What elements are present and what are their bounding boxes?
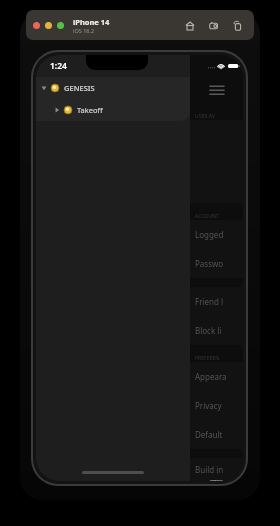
button[interactable]: GENESIS xyxy=(36,77,190,99)
button[interactable]: Passwo xyxy=(190,249,243,278)
staticText: PREFEREN xyxy=(195,355,220,362)
button[interactable]: Privacy xyxy=(190,391,243,420)
button[interactable]: Block li xyxy=(190,316,243,345)
button[interactable]: Close xyxy=(33,22,40,29)
staticText: Takeoff xyxy=(77,105,103,115)
button[interactable]: Menu xyxy=(190,77,243,103)
staticText: Default xyxy=(195,429,223,440)
button[interactable]: Maximize xyxy=(57,22,64,29)
button[interactable]: Minimize xyxy=(45,22,52,29)
staticText: Friend l xyxy=(195,296,224,307)
staticText: Passwo xyxy=(195,258,224,269)
staticText: Appeara xyxy=(195,371,227,382)
staticText: Block li xyxy=(195,325,222,336)
button[interactable]: Screenshot xyxy=(206,18,221,33)
button[interactable]: Build in xyxy=(190,458,243,481)
button[interactable]: Friend l xyxy=(190,287,243,316)
staticText: USER AV xyxy=(195,113,215,120)
staticText: iPhone 14 xyxy=(73,17,110,27)
button[interactable]: Appeara xyxy=(190,362,243,391)
staticText: Build in xyxy=(195,464,224,475)
staticText: Logged xyxy=(195,229,224,240)
button[interactable]: Default xyxy=(190,420,243,449)
staticText: ACCOUNT xyxy=(195,213,219,220)
button[interactable]: Takeoff xyxy=(36,99,190,121)
staticText: iOS 16.2 xyxy=(73,27,95,34)
button[interactable]: Home xyxy=(182,18,197,33)
staticText: 1:24 xyxy=(50,60,67,72)
button[interactable]: Logged xyxy=(190,220,243,249)
staticText: Privacy xyxy=(195,400,222,411)
staticText: GENESIS xyxy=(64,83,95,93)
button[interactable]: Rotate xyxy=(230,18,245,33)
